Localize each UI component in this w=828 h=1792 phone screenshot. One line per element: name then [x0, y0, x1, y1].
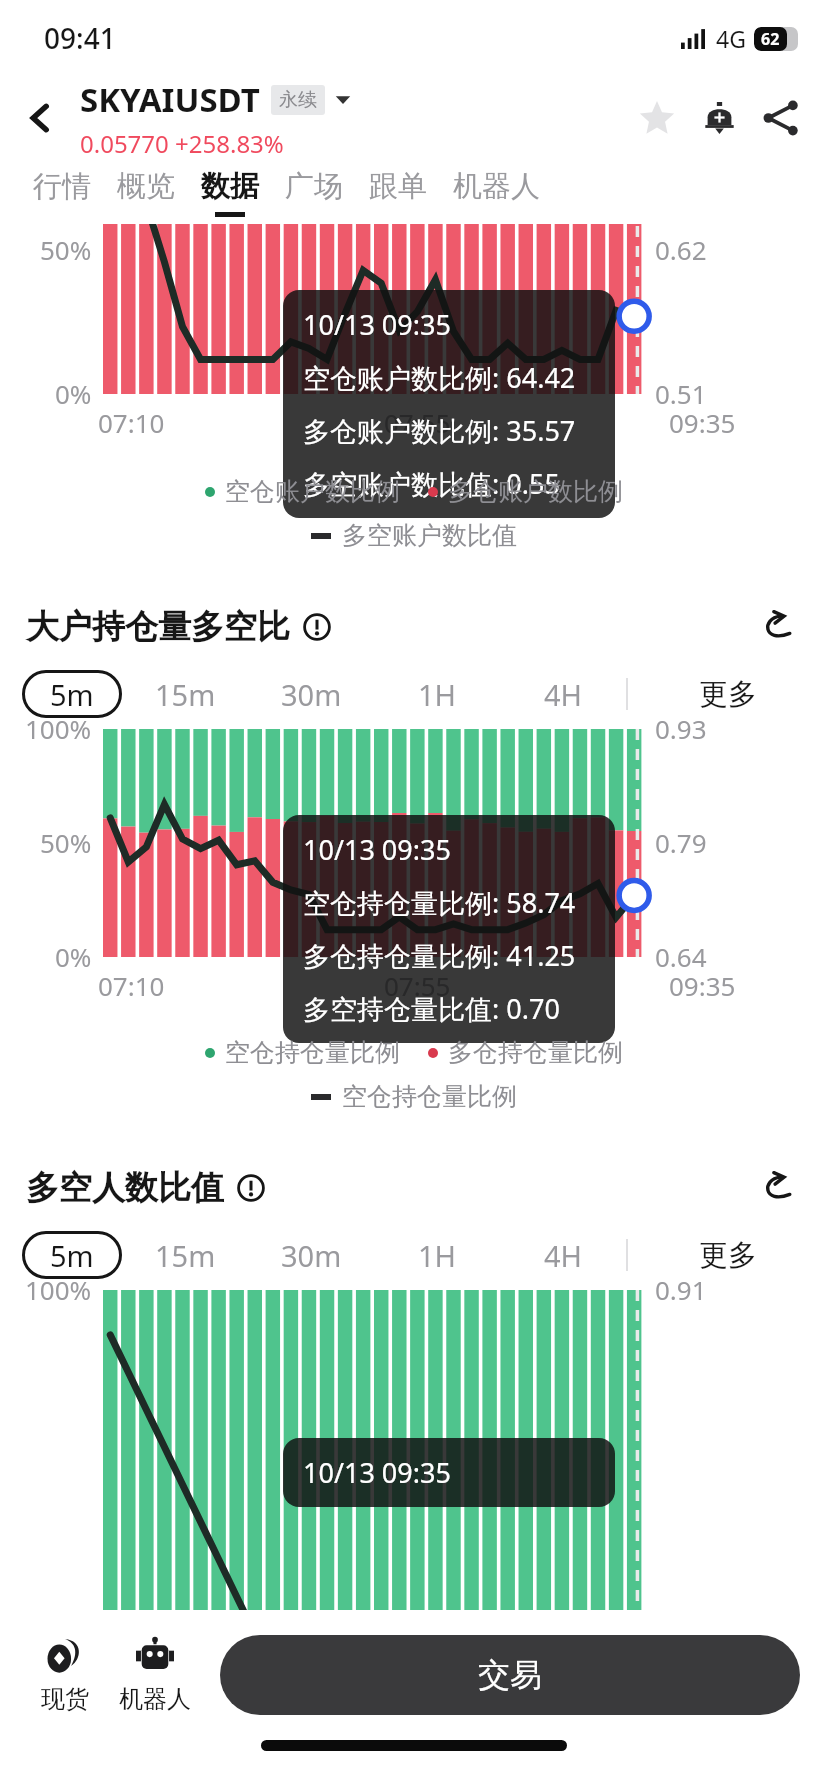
staticText: 0.62: [655, 232, 707, 267]
button[interactable]: Share: [750, 87, 812, 149]
staticText: 1H: [418, 1236, 457, 1275]
staticText: 50%: [40, 825, 92, 860]
staticText: 0.93: [655, 711, 707, 746]
staticText: 100%: [25, 1272, 92, 1307]
staticText: 15m: [155, 1236, 216, 1275]
button[interactable]: 5m: [22, 670, 122, 718]
button[interactable]: 行情: [20, 160, 104, 224]
button[interactable]: 1H: [374, 670, 500, 718]
button[interactable]: Price alert: [688, 87, 750, 149]
staticText: 0.79: [655, 825, 707, 860]
button[interactable]: 4H: [500, 670, 626, 718]
staticText: 5m: [50, 675, 94, 714]
staticText: 数据: [201, 168, 259, 205]
button[interactable]: 概览: [104, 160, 188, 224]
staticText: 09:41: [44, 19, 116, 57]
staticText: 多空人数比值: [26, 1167, 224, 1209]
staticText: 50%: [40, 1616, 92, 1651]
staticText: 0%: [55, 376, 92, 411]
button[interactable]: 数据: [188, 160, 272, 224]
button[interactable]: 机器人: [110, 1637, 200, 1714]
staticText: 0%: [55, 939, 92, 974]
button[interactable]: 4H: [500, 1231, 626, 1279]
staticText: 0.05770 +258.83%: [80, 127, 284, 160]
staticText: 广场: [285, 168, 343, 205]
staticText: 多仓账户数比例: [448, 476, 623, 507]
staticText: 4H: [544, 1236, 583, 1275]
staticText: 0.64: [655, 939, 707, 974]
button[interactable]: 更多: [628, 1231, 828, 1279]
button[interactable]: 更多: [628, 670, 828, 718]
button[interactable]: 1H: [374, 1231, 500, 1279]
staticText: 空仓持仓量比例: [342, 1081, 517, 1112]
staticText: SKYAIUSDT: [80, 77, 260, 122]
staticText: 4G: [716, 23, 746, 54]
staticText: 10/13 09:35: [303, 831, 451, 868]
staticText: 50%: [40, 232, 92, 267]
staticText: 空仓账户数比例: [225, 476, 400, 507]
button[interactable]: 机器人: [440, 160, 553, 224]
staticText: 10/13 09:35: [303, 306, 451, 343]
button[interactable]: 广场: [272, 160, 356, 224]
staticText: 多空账户数比值: 0.55: [303, 465, 560, 502]
button[interactable]: 15m: [122, 670, 248, 718]
button[interactable]: Favorite: [626, 87, 688, 149]
button[interactable]: 30m: [248, 670, 374, 718]
staticText: 09:35: [669, 968, 736, 1003]
staticText: 0.78: [655, 1616, 707, 1651]
staticText: 多仓持仓量比例: [448, 1037, 623, 1068]
staticText: 机器人: [119, 1684, 191, 1714]
staticText: 5m: [50, 1236, 94, 1275]
button[interactable]: Info: [300, 610, 334, 644]
button[interactable]: 5m: [22, 1231, 122, 1279]
staticText: 62: [761, 28, 780, 50]
staticText: 09:35: [669, 405, 736, 440]
staticText: 空仓持仓量比例: [225, 1037, 400, 1068]
staticText: 4H: [544, 675, 583, 714]
button[interactable]: 现货: [20, 1637, 110, 1714]
staticText: 100%: [25, 711, 92, 746]
button[interactable]: Back: [12, 89, 70, 147]
staticText: 07:55: [384, 968, 451, 1003]
staticText: 更多: [699, 1237, 757, 1274]
staticText: 07:10: [98, 405, 165, 440]
staticText: 多空持仓量比值: 0.70: [303, 990, 560, 1027]
staticText: 机器人: [453, 168, 540, 205]
staticText: 交易: [478, 1655, 542, 1695]
staticText: 0.51: [655, 376, 707, 411]
staticText: 30m: [281, 1236, 342, 1275]
button[interactable]: Open full chart: [752, 602, 802, 652]
button[interactable]: 15m: [122, 1231, 248, 1279]
button[interactable]: 跟单: [356, 160, 440, 224]
staticText: 1H: [418, 675, 457, 714]
staticText: 行情: [33, 168, 91, 205]
staticText: 07:55: [384, 405, 451, 440]
staticText: 0.91: [655, 1272, 707, 1307]
staticText: 多仓持仓量比例: 41.25 %: [303, 937, 595, 974]
staticText: 多仓账户数比例: 35.57 %: [303, 412, 595, 449]
button[interactable]: Open full chart: [752, 1163, 802, 1213]
staticText: 空仓持仓量比例: 58.74 %: [303, 884, 595, 921]
staticText: 空仓账户数比例: 64.42 %: [303, 359, 595, 396]
staticText: 10/13 09:35: [303, 1454, 451, 1491]
staticText: 大户持仓量多空比: [26, 606, 290, 648]
staticText: 15m: [155, 675, 216, 714]
staticText: 更多: [699, 676, 757, 713]
staticText: 概览: [117, 168, 175, 205]
staticText: 跟单: [369, 168, 427, 205]
button[interactable]: 30m: [248, 1231, 374, 1279]
staticText: 多空账户数比值: [342, 520, 517, 551]
staticText: 07:10: [98, 968, 165, 1003]
button[interactable]: Info: [234, 1171, 268, 1205]
staticText: 30m: [281, 675, 342, 714]
staticText: 永续: [279, 88, 317, 112]
staticText: 现货: [41, 1684, 89, 1714]
button[interactable]: 交易: [220, 1635, 800, 1715]
